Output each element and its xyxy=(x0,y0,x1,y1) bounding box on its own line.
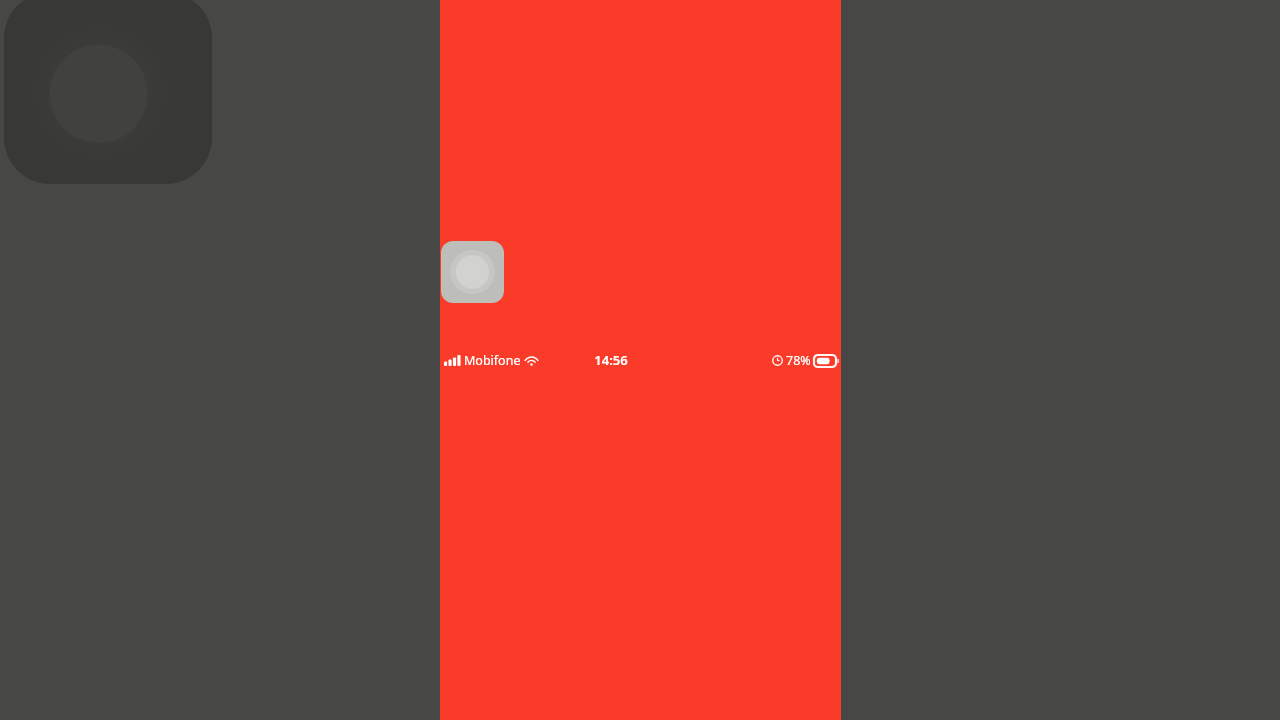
button[interactable]: Image placeholder xyxy=(441,241,504,303)
staticText: 78% xyxy=(786,352,811,369)
staticText: 14:56 xyxy=(594,351,628,369)
staticText: Mobifone xyxy=(464,352,521,369)
